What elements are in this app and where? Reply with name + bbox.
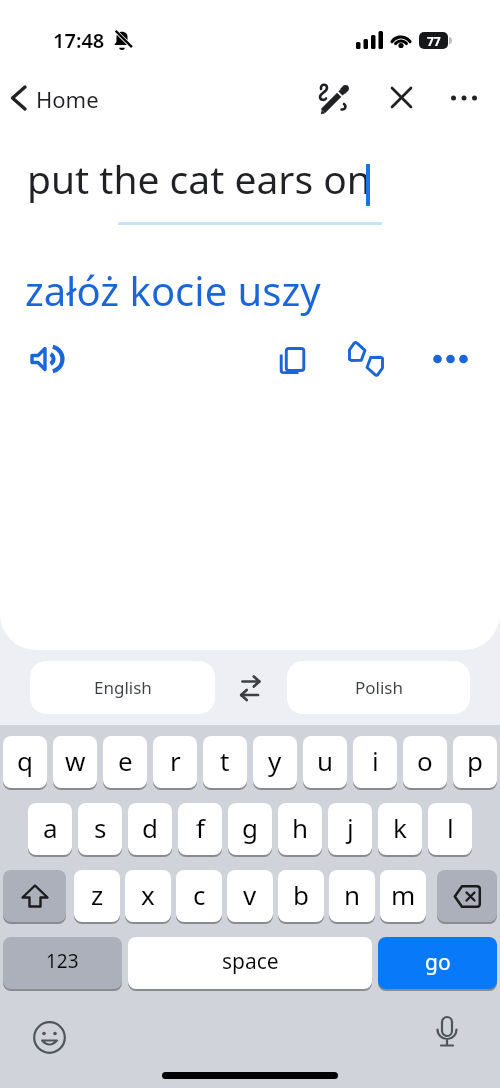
button[interactable] bbox=[33, 1021, 66, 1054]
button[interactable]: 123 bbox=[3, 937, 122, 989]
button[interactable] bbox=[433, 1017, 461, 1055]
button[interactable]: j bbox=[328, 803, 372, 855]
button[interactable]: Polish bbox=[287, 661, 470, 714]
staticText: put the cat ears on bbox=[27, 152, 371, 205]
button[interactable]: u bbox=[303, 736, 347, 788]
staticText: z bbox=[91, 877, 104, 912]
button[interactable]: w bbox=[53, 736, 97, 788]
staticText: space bbox=[222, 947, 279, 976]
button[interactable]: y bbox=[253, 736, 297, 788]
button[interactable] bbox=[30, 342, 64, 376]
button[interactable] bbox=[3, 870, 66, 922]
button[interactable] bbox=[348, 341, 384, 377]
staticText: x bbox=[141, 877, 155, 912]
button[interactable] bbox=[11, 87, 25, 109]
button[interactable]: d bbox=[128, 803, 172, 855]
staticText: y bbox=[268, 743, 282, 778]
button[interactable] bbox=[392, 88, 411, 107]
button[interactable]: k bbox=[378, 803, 422, 855]
staticText: b bbox=[293, 877, 309, 912]
button[interactable]: x bbox=[125, 870, 171, 922]
button[interactable]: t bbox=[203, 736, 247, 788]
staticText: s bbox=[94, 810, 107, 845]
button[interactable] bbox=[277, 345, 305, 373]
staticText: v bbox=[243, 877, 257, 912]
staticText: t bbox=[220, 743, 230, 778]
staticText: k bbox=[393, 810, 407, 845]
button[interactable] bbox=[315, 80, 351, 116]
button[interactable]: n bbox=[329, 870, 375, 922]
button[interactable]: go bbox=[378, 937, 497, 989]
staticText: u bbox=[317, 743, 334, 778]
staticText: p bbox=[467, 743, 483, 778]
button[interactable]: g bbox=[228, 803, 272, 855]
button[interactable]: e bbox=[103, 736, 147, 788]
staticText: l bbox=[447, 810, 454, 845]
button[interactable] bbox=[433, 347, 467, 371]
button[interactable]: q bbox=[3, 736, 47, 788]
staticText: w bbox=[65, 743, 86, 778]
staticText: n bbox=[344, 877, 361, 912]
staticText: m bbox=[391, 877, 416, 912]
button[interactable]: v bbox=[227, 870, 273, 922]
button[interactable]: h bbox=[278, 803, 322, 855]
staticText: English bbox=[94, 676, 152, 699]
button[interactable]: z bbox=[74, 870, 120, 922]
staticText: h bbox=[292, 810, 309, 845]
button[interactable] bbox=[237, 675, 263, 701]
button[interactable]: b bbox=[278, 870, 324, 922]
staticText: d bbox=[142, 810, 158, 845]
staticText: 77 bbox=[427, 33, 441, 49]
staticText: f bbox=[196, 810, 205, 845]
staticText: Polish bbox=[355, 676, 403, 699]
staticText: j bbox=[347, 810, 354, 845]
button[interactable]: Home bbox=[36, 84, 99, 114]
staticText: r bbox=[170, 743, 181, 778]
button[interactable]: o bbox=[403, 736, 447, 788]
button[interactable]: English bbox=[30, 661, 215, 714]
button[interactable]: s bbox=[78, 803, 122, 855]
staticText: c bbox=[193, 877, 206, 912]
staticText: załóż kocie uszy bbox=[25, 263, 321, 317]
button[interactable] bbox=[437, 870, 497, 922]
staticText: go bbox=[425, 948, 451, 977]
button[interactable]: r bbox=[153, 736, 197, 788]
button[interactable]: c bbox=[176, 870, 222, 922]
staticText: i bbox=[372, 743, 379, 778]
staticText: 17:48 bbox=[53, 27, 105, 54]
staticText: q bbox=[17, 743, 33, 778]
staticText: o bbox=[417, 743, 433, 778]
button[interactable]: l bbox=[428, 803, 472, 855]
button[interactable]: m bbox=[380, 870, 426, 922]
button[interactable]: a bbox=[28, 803, 72, 855]
staticText: e bbox=[118, 743, 133, 778]
button[interactable]: i bbox=[353, 736, 397, 788]
button[interactable]: p bbox=[453, 736, 497, 788]
button[interactable]: space bbox=[128, 937, 372, 989]
staticText: 123 bbox=[46, 948, 79, 974]
staticText: a bbox=[43, 810, 58, 845]
staticText: g bbox=[242, 810, 258, 845]
button[interactable] bbox=[450, 86, 478, 110]
button[interactable]: f bbox=[178, 803, 222, 855]
